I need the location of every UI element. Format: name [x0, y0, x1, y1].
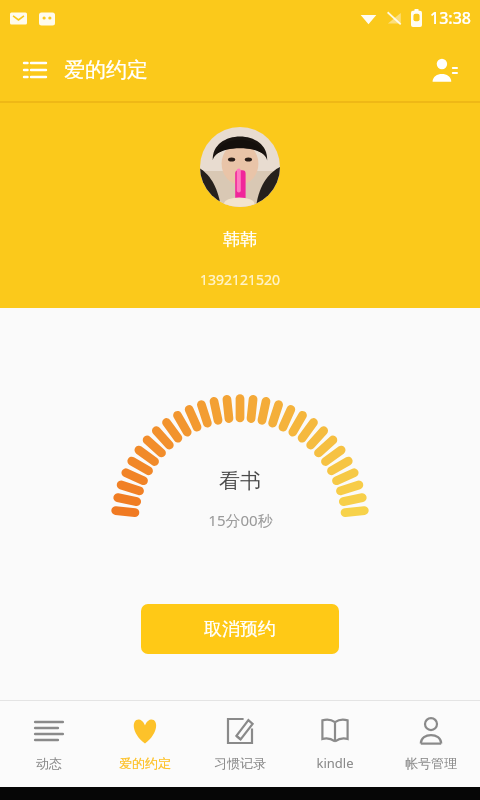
button[interactable]: kindle: [289, 700, 381, 787]
staticText: 13:38: [430, 7, 471, 29]
button[interactable]: Menu: [20, 55, 50, 85]
button[interactable]: Add friend: [424, 50, 464, 90]
button[interactable]: 帐号管理: [385, 700, 477, 787]
button[interactable]: Avatar: [200, 127, 280, 207]
staticText: 爱的约定: [64, 57, 148, 83]
button[interactable]: 动态: [3, 700, 95, 787]
staticText: 看书: [219, 468, 261, 494]
button[interactable]: 取消预约: [141, 604, 339, 654]
staticText: 动态: [36, 755, 62, 771]
staticText: 15分00秒: [208, 510, 273, 530]
button[interactable]: 习惯记录: [194, 700, 286, 787]
staticText: 韩韩: [223, 229, 257, 250]
staticText: 帐号管理: [405, 755, 457, 771]
staticText: 习惯记录: [214, 755, 266, 771]
staticText: 1392121520: [200, 270, 281, 289]
staticText: 爱的约定: [119, 755, 171, 771]
staticText: 取消预约: [204, 618, 276, 641]
button[interactable]: 爱的约定: [99, 700, 191, 787]
staticText: kindle: [316, 754, 354, 772]
